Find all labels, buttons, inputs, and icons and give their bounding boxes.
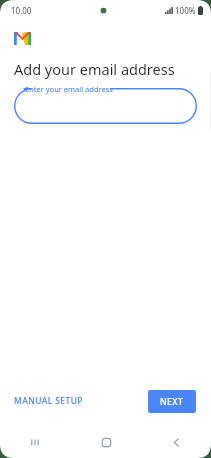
button[interactable]: Home [71,427,141,458]
staticText: 10.00 [11,5,32,16]
button[interactable]: Recent apps [0,427,71,458]
button[interactable]: NEXT [148,390,196,413]
staticText: Add your email address [14,59,175,79]
button[interactable]: MANUAL SETUP [8,389,89,413]
button[interactable]: Enter your email address [14,88,197,124]
staticText: NEXT [160,396,184,408]
button[interactable]: Back [141,427,211,458]
staticText: 100% [175,5,196,16]
staticText: MANUAL SETUP [14,395,83,407]
staticText: Enter your email address [25,84,113,94]
